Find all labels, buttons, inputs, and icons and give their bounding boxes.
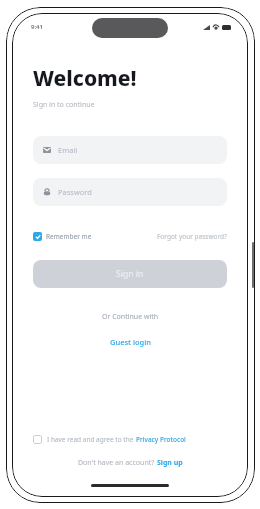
button[interactable]: Email xyxy=(33,136,227,164)
button[interactable]: Sign up xyxy=(157,458,183,468)
staticText: Email xyxy=(58,145,78,155)
button[interactable]: Password xyxy=(33,178,227,206)
staticText: Sign up xyxy=(157,458,183,468)
button[interactable]: Forgot your password? xyxy=(157,230,227,243)
staticText: Sign in xyxy=(116,268,144,280)
button[interactable]: I have read and agree to the xyxy=(33,435,227,444)
staticText: 9:41 xyxy=(31,23,43,31)
staticText: Sign in to continue xyxy=(33,100,95,110)
staticText: Forgot your password? xyxy=(157,232,227,241)
staticText: Or Continue with xyxy=(102,312,159,322)
staticText: Guest login xyxy=(110,337,151,347)
staticText: Remember me xyxy=(46,232,92,241)
button[interactable]: Sign in xyxy=(33,260,227,288)
staticText: Privacy Protocol xyxy=(136,435,186,444)
staticText: Don't have an account? xyxy=(78,458,157,468)
button[interactable]: Guest login xyxy=(107,334,154,350)
staticText: Password xyxy=(58,187,92,197)
button[interactable]: Remember me xyxy=(33,230,92,243)
staticText: I have read and agree to the xyxy=(47,435,136,444)
staticText: Welcome! xyxy=(33,64,137,93)
